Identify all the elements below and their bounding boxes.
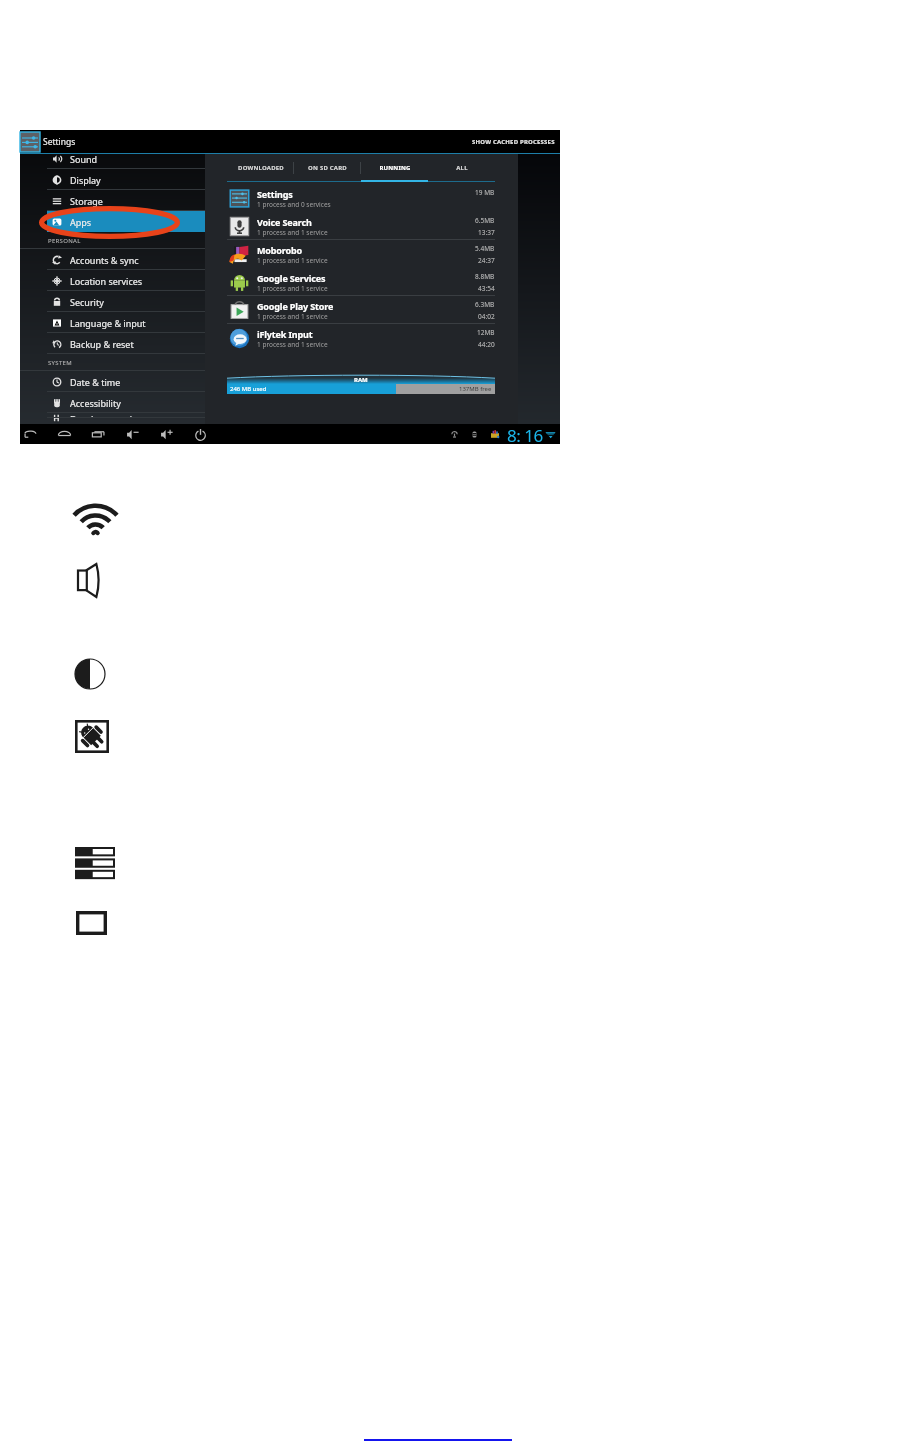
button[interactable]: Date & time — [20, 371, 205, 392]
staticText: RAM — [354, 376, 368, 384]
staticText: SYSTEM — [48, 359, 72, 367]
staticText: Accessibility — [70, 397, 121, 409]
staticText: 137MB free — [459, 385, 492, 393]
staticText: 12MB — [477, 328, 495, 337]
button[interactable]: Home — [56, 426, 73, 443]
button[interactable]: Moborobo — [227, 240, 495, 268]
staticText: 24:37 — [478, 256, 495, 265]
staticText: Settings — [257, 188, 293, 200]
button[interactable]: SHOW CACHED PROCESSES — [472, 138, 555, 146]
button[interactable]: Security — [20, 291, 205, 312]
button[interactable]: Language & input — [20, 312, 205, 333]
button[interactable]: Android — [75, 720, 109, 753]
staticText: DOWNLOADED — [238, 164, 284, 172]
staticText: Developer options — [70, 413, 148, 418]
staticText: Display — [70, 174, 101, 186]
button[interactable]: Volume down — [124, 426, 141, 443]
button[interactable]: RUNNING — [361, 154, 428, 182]
button[interactable]: Backup & reset — [20, 333, 205, 354]
staticText: RUNNING — [379, 164, 411, 172]
button[interactable]: Display — [20, 169, 205, 190]
staticText: 1 process and 1 service — [257, 312, 328, 321]
staticText: 5.4MB — [475, 244, 495, 253]
staticText: Settings — [43, 136, 76, 148]
button[interactable]: Google Services — [227, 268, 495, 296]
button[interactable]: DOWNLOADED — [227, 154, 294, 182]
staticText: Sound — [70, 153, 98, 165]
button[interactable]: Power — [192, 426, 209, 443]
button[interactable]: iFlytek Input — [227, 324, 495, 352]
button[interactable]: ALL — [428, 154, 495, 182]
staticText: Accounts & sync — [70, 254, 139, 266]
button[interactable]: Voice Search — [227, 212, 495, 240]
staticText: 19 MB — [475, 188, 495, 197]
staticText: Language & input — [70, 317, 146, 329]
staticText: 04:02 — [478, 312, 495, 321]
staticText: 1 process and 0 services — [257, 200, 331, 209]
button[interactable]: Recent apps — [90, 426, 107, 443]
button[interactable]: Settings — [227, 184, 495, 212]
button[interactable]: Google Play Store — [227, 296, 495, 324]
button[interactable]: Accounts & sync — [20, 249, 205, 270]
button[interactable]: Apps — [20, 211, 205, 232]
button[interactable]: Volume up — [158, 426, 175, 443]
button[interactable]: ON SD CARD — [294, 154, 361, 182]
staticText: 8.8MB — [475, 272, 495, 281]
staticText: Google Services — [257, 272, 326, 284]
button[interactable]: Sound — [20, 148, 205, 169]
staticText: SHOW CACHED PROCESSES — [472, 138, 555, 146]
staticText: Location services — [70, 275, 143, 287]
button[interactable]: Brightness — [74, 658, 106, 690]
staticText: 6.3MB — [475, 300, 495, 309]
staticText: Storage — [70, 195, 103, 207]
staticText: 1 process and 1 service — [257, 340, 328, 349]
staticText: Google Play Store — [257, 300, 334, 312]
button[interactable]: Storage — [20, 190, 205, 211]
staticText: 1 process and 1 service — [257, 284, 328, 293]
staticText: 6.5MB — [475, 216, 495, 225]
staticText: 13:37 — [478, 228, 495, 237]
staticText: Voice Search — [257, 216, 312, 228]
button[interactable]: Back — [22, 426, 39, 443]
staticText: Apps — [70, 216, 92, 228]
button[interactable]: Accessibility — [20, 392, 205, 413]
staticText: Moborobo — [257, 244, 303, 256]
staticText: Security — [70, 296, 104, 308]
staticText: ALL — [456, 164, 468, 172]
staticText: iFlytek Input — [257, 328, 313, 340]
staticText: 246 MB used — [230, 385, 267, 393]
staticText: 44:20 — [478, 340, 495, 349]
staticText: Date & time — [70, 376, 121, 388]
button[interactable]: Wi-Fi — [75, 503, 116, 534]
button[interactable]: Screen — [76, 911, 107, 935]
staticText: 1 process and 1 service — [257, 256, 328, 265]
staticText: 1 process and 1 service — [257, 228, 328, 237]
staticText: PERSONAL — [48, 237, 81, 245]
button[interactable]: Developer options — [20, 413, 205, 418]
staticText: 43:54 — [478, 284, 495, 293]
staticText: 8: 16 — [507, 424, 543, 444]
staticText: ON SD CARD — [308, 164, 347, 172]
button[interactable]: Volume — [77, 563, 99, 598]
button[interactable]: Location services — [20, 270, 205, 291]
button[interactable]: Levels — [75, 847, 115, 877]
staticText: Backup & reset — [70, 338, 134, 350]
